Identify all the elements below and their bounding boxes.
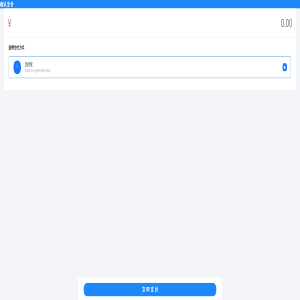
staticText: ¥ <box>8 15 11 30</box>
button[interactable]: 立即支付 <box>83 283 216 296</box>
other: Selected <box>282 63 287 71</box>
staticText: 立即支付 <box>142 286 159 293</box>
staticText: 0.00 <box>281 16 292 30</box>
staticText: 确认支付 <box>0 1 14 7</box>
staticText: 支付宝 <box>25 62 33 67</box>
staticText: 选择支付方式 <box>9 45 24 51</box>
staticText: 支 <box>16 65 18 70</box>
staticText: 推荐有支付宝账号的用户使用 <box>25 69 50 73</box>
button[interactable]: 支 <box>8 56 291 79</box>
button[interactable]: 确认支付 <box>0 0 300 8</box>
